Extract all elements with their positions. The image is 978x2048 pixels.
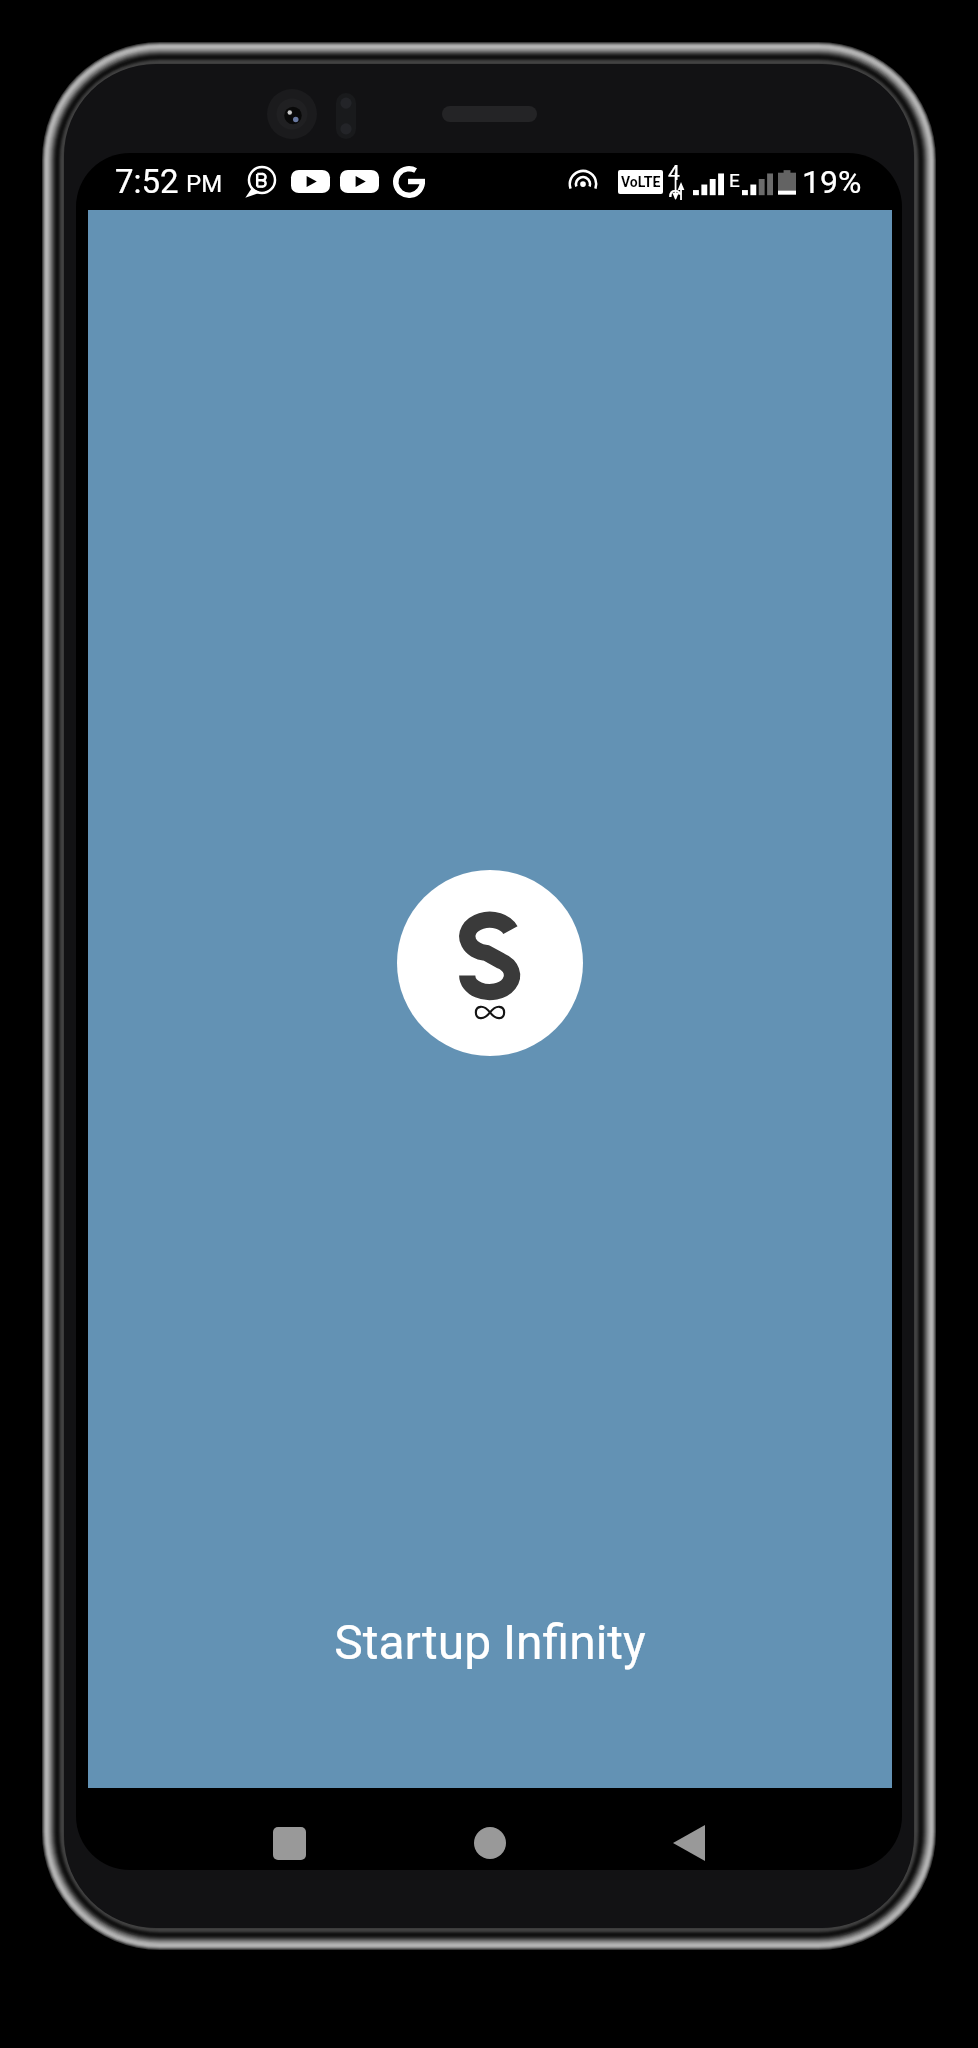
staticText: 19% [802,163,862,201]
button[interactable]: Recent apps [222,1814,356,1872]
staticText: E [729,169,740,191]
staticText: 4G [668,161,689,197]
staticText: PM [186,170,223,198]
button[interactable]: Home [423,1814,557,1872]
staticText: VoLTE [621,174,661,190]
button[interactable]: Back [622,1814,756,1872]
staticText: 7:52 [115,162,179,201]
staticText: Startup Infinity [334,1614,646,1670]
